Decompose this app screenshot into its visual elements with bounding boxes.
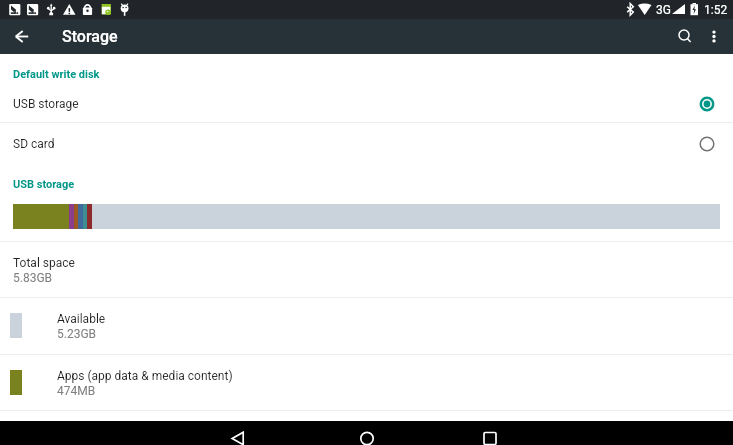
staticText: Apps (app data & media content)	[57, 369, 233, 383]
staticText: 3G	[656, 3, 671, 17]
button[interactable]: More options	[698, 19, 730, 54]
button[interactable]: Back	[213, 421, 263, 445]
button[interactable]: Home	[342, 421, 392, 445]
staticText: USB storage	[13, 97, 79, 111]
staticText: Available	[57, 312, 106, 326]
staticText: 1:52	[704, 3, 728, 17]
staticText: 474MB	[57, 384, 96, 398]
button[interactable]: Recents	[465, 421, 515, 445]
staticText: Default write disk	[13, 68, 100, 81]
button[interactable]: Back	[6, 19, 38, 54]
staticText: 5.83GB	[13, 271, 53, 285]
staticText: Total space	[13, 256, 75, 270]
button[interactable]: SD card	[0, 123, 733, 165]
button[interactable]: Total space	[0, 241, 733, 297]
button[interactable]: USB storage	[0, 86, 733, 122]
button[interactable]: Apps (app data & media content)	[0, 354, 733, 410]
button[interactable]: Available	[0, 297, 733, 354]
staticText: Storage	[62, 27, 118, 46]
staticText: USB storage	[13, 178, 75, 191]
staticText: 5.23GB	[57, 327, 97, 341]
button[interactable]: Search	[669, 19, 701, 54]
staticText: SD card	[13, 137, 55, 151]
